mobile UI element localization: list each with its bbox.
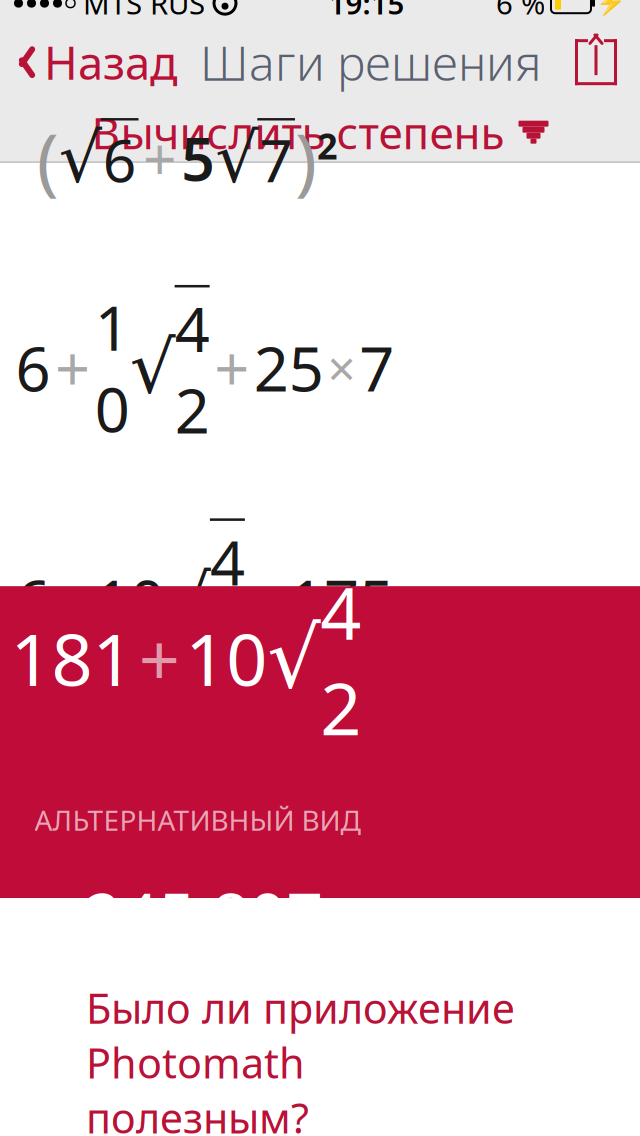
staticText: 6 % (496, 0, 545, 23)
staticText: ( (37, 110, 59, 207)
staticText: Назад (44, 32, 178, 92)
staticText: ) (295, 110, 317, 207)
staticText: 25 (254, 327, 324, 408)
button[interactable]: Назад (0, 26, 178, 98)
staticText: 6 (16, 560, 51, 642)
staticText: 175 (289, 560, 394, 642)
staticText: 42 (175, 287, 210, 450)
staticText: √ (267, 610, 321, 706)
staticText: 2 (317, 122, 338, 169)
staticText: √ (165, 560, 211, 642)
staticText: √ (130, 327, 176, 408)
staticText: 6 (103, 120, 137, 198)
staticText: 181 (10, 610, 133, 706)
staticText: 10 (95, 560, 165, 642)
staticText: × (328, 335, 356, 400)
staticText: АЛЬТЕРНАТИВНЫЙ ВИД (35, 801, 361, 838)
staticText: + (249, 560, 284, 642)
staticText: Было ли приложение Photomath полезным? (86, 980, 515, 1136)
staticText: 6 (15, 327, 50, 408)
staticText: 245.807 (85, 872, 324, 957)
staticText: 42 (210, 521, 245, 684)
staticText: √ (59, 120, 102, 197)
staticText: 42 (320, 564, 361, 755)
staticText: + (139, 610, 180, 706)
staticText: ≈ (35, 888, 75, 942)
staticText: √ (215, 120, 258, 197)
staticText: 5 (181, 119, 215, 197)
staticText: + (214, 327, 249, 408)
staticText: + (143, 119, 177, 197)
staticText: 10 (185, 610, 267, 706)
staticText: 7 (359, 327, 394, 408)
staticText: + (55, 560, 90, 642)
staticText: Вычислить степень (91, 103, 504, 161)
button[interactable]: Вычислить степень (0, 101, 640, 163)
staticText: 7 (259, 120, 293, 198)
staticText: MTS RUS (83, 0, 205, 23)
staticText: ⚡ (596, 0, 626, 17)
staticText: 10 (95, 286, 130, 449)
staticText: 19:15 (328, 0, 404, 23)
button[interactable]: Было ли приложение Photomath полезным? (0, 980, 640, 1136)
button[interactable]: Share (572, 30, 640, 94)
staticText: Шаги решения (200, 30, 541, 94)
staticText: + (55, 327, 90, 408)
